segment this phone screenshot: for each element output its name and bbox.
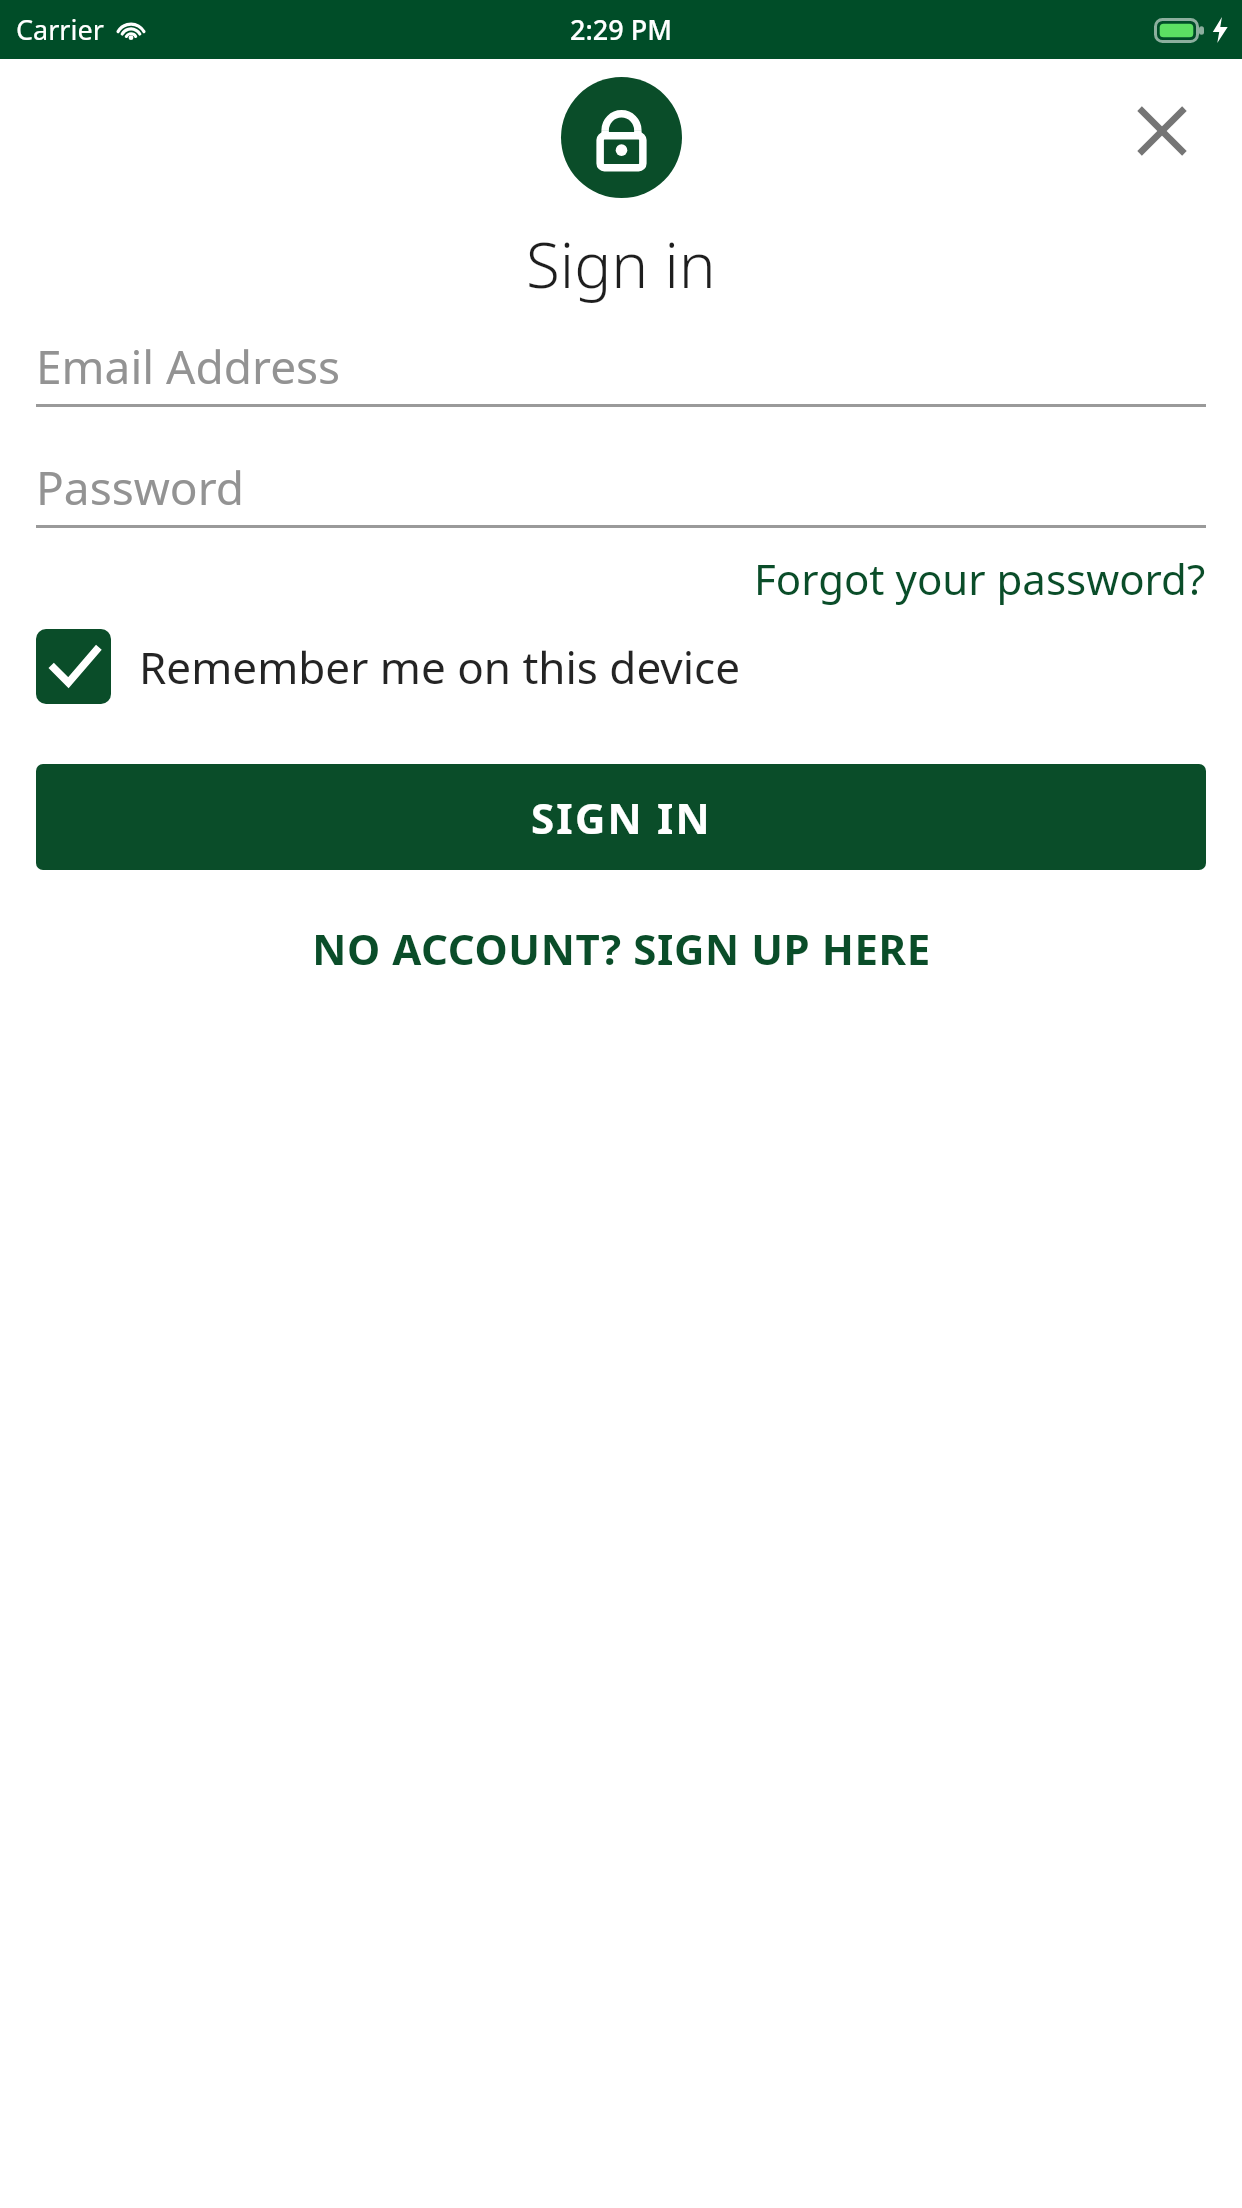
staticText: Remember me on this device: [139, 637, 740, 697]
staticText: Carrier: [16, 11, 104, 48]
staticText: 2:29 PM: [570, 11, 672, 48]
button[interactable]: Remember me on this device: [36, 625, 1206, 708]
staticText: Password: [36, 456, 245, 519]
button[interactable]: SIGN IN: [36, 764, 1206, 870]
button[interactable]: Password: [36, 449, 1206, 528]
staticText: Sign in: [526, 222, 716, 306]
staticText: SIGN IN: [531, 789, 712, 846]
staticText: Email Address: [36, 335, 341, 398]
button[interactable]: Close: [1126, 95, 1198, 167]
button[interactable]: Forgot your password?: [754, 546, 1206, 611]
button[interactable]: Email Address: [36, 328, 1206, 407]
button[interactable]: NO ACCOUNT? SIGN UP HERE: [312, 912, 931, 985]
